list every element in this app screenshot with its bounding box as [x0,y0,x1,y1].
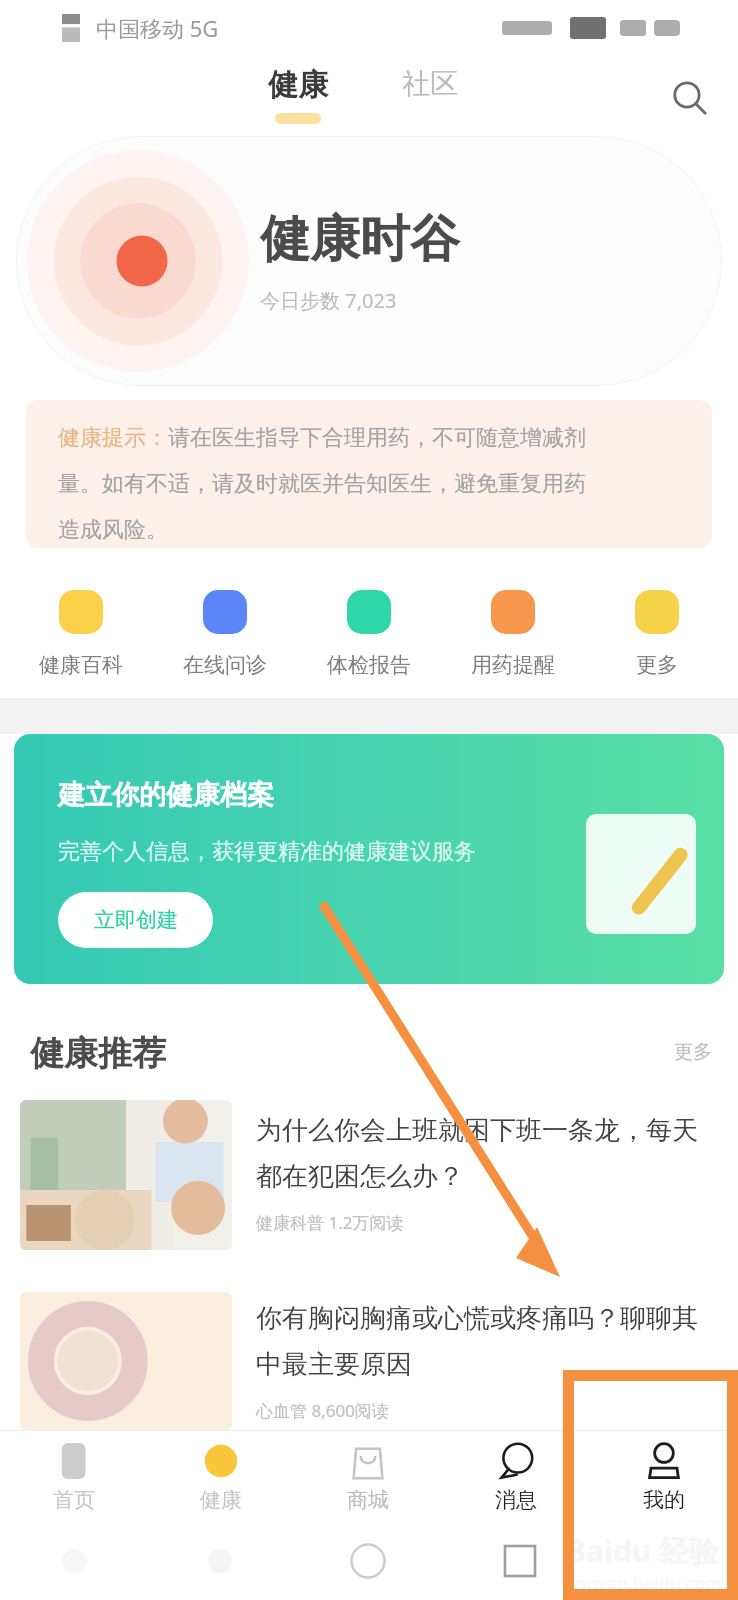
staticText: 体检报告 [327,652,411,678]
button[interactable]: 立即创建 [58,892,213,948]
staticText: 健康科普 1.2万阅读 [256,1211,404,1234]
button[interactable]: 商城 [294,1443,442,1513]
staticText: 社区 [402,66,458,101]
staticText: 首页 [53,1487,95,1513]
button[interactable]: Search [662,70,718,126]
button[interactable]: 健康时谷 [16,136,722,386]
staticText: 建立你的健康档案 [58,778,274,812]
button[interactable]: 更多 [674,1032,716,1064]
button[interactable]: 消息 [442,1443,590,1513]
button[interactable]: 在线问诊 [153,590,297,678]
staticText: 更多 [674,1040,712,1064]
staticText: 为什么你会上班就困下班一条龙，每天都在犯困怎么办？ [256,1114,718,1193]
button[interactable]: 建立你的健康档案 [14,734,724,984]
button[interactable]: 为什么你会上班就困下班一条龙，每天都在犯困怎么办？ [0,1086,738,1272]
button[interactable]: Recents [500,1541,540,1581]
staticText: 健康百科 [39,652,123,678]
staticText: 你有胸闷胸痛或心慌或疼痛吗？聊聊其中最主要原因 [256,1302,718,1381]
button[interactable]: Home [348,1541,388,1581]
staticText: 用药提醒 [471,652,555,678]
staticText: 商城 [347,1487,389,1513]
staticText: 更多 [636,652,678,678]
staticText: 立即创建 [94,907,178,933]
button[interactable]: 健康提示： [26,400,712,548]
staticText: Baidu 经验 [566,1530,720,1571]
button[interactable]: 用药提醒 [441,590,585,678]
staticText: 心血管 8,600阅读 [256,1399,389,1422]
staticText: 健康时谷 [260,208,460,271]
staticText: 中国移动 5G [96,13,219,43]
button[interactable]: 更多 [585,590,729,678]
staticText: jingyan.baidu.com [566,1571,722,1596]
staticText: 量。如有不适，请及时就医并告知医生，避免重复用药 [58,470,586,498]
staticText: 请在医生指导下合理用药，不可随意增减剂 [168,424,586,452]
button[interactable]: 体检报告 [297,590,441,678]
staticText: 今日步数 7,023 [260,287,397,314]
button[interactable]: 你有胸闷胸痛或心慌或疼痛吗？聊聊其中最主要原因 [0,1272,738,1430]
button[interactable]: 健康百科 [9,590,153,678]
staticText: 健康 [268,66,328,104]
staticText: 健康推荐 [30,1032,166,1075]
staticText: 造成风险。 [58,516,168,544]
staticText: 消息 [495,1487,537,1513]
staticText: 我的 [643,1487,685,1513]
button[interactable]: 健康 [147,1443,294,1513]
staticText: 在线问诊 [183,652,267,678]
staticText: 健康 [200,1487,242,1513]
button[interactable]: 首页 [0,1443,147,1513]
staticText: 健康提示： [58,424,168,452]
button[interactable]: 我的 [590,1443,738,1513]
staticText: 完善个人信息，获得更精准的健康建议服务 [58,838,476,866]
